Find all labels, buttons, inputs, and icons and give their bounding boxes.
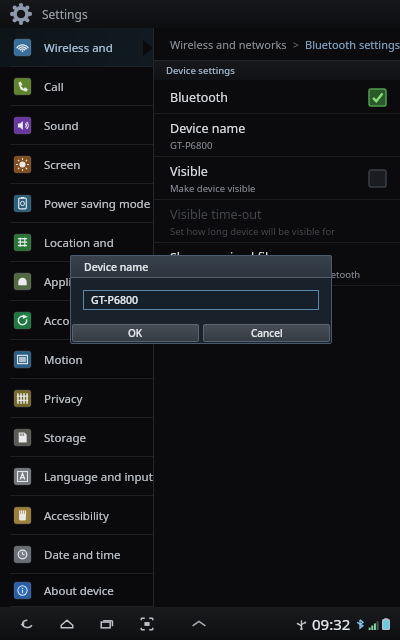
staticText: Sound bbox=[44, 118, 79, 134]
staticText: Device name bbox=[170, 120, 246, 137]
staticText: Screen bbox=[44, 157, 81, 173]
staticText: Motion bbox=[44, 352, 83, 368]
button[interactable]: Back bbox=[14, 611, 40, 637]
staticText: Make device visible bbox=[170, 182, 256, 195]
button[interactable]: Privacy bbox=[0, 379, 153, 418]
staticText: Applications bbox=[44, 274, 111, 290]
button[interactable]: Show received files bbox=[154, 243, 400, 286]
staticText: Visible time-out bbox=[170, 206, 262, 223]
button[interactable]: Location and security bbox=[0, 223, 153, 262]
staticText: Show received files bbox=[170, 249, 282, 266]
staticText: Show the list of files received via Blue… bbox=[170, 268, 361, 281]
button[interactable]: Sound bbox=[0, 106, 153, 145]
staticText: OK bbox=[128, 326, 143, 340]
staticText: Bluetooth bbox=[170, 89, 229, 106]
button[interactable]: Date and time bbox=[0, 535, 153, 574]
staticText: Date and time bbox=[44, 547, 121, 563]
staticText: Accounts and sync bbox=[44, 313, 144, 329]
button[interactable]: Wireless and networks bbox=[0, 28, 153, 67]
button[interactable]: Show notifications bbox=[186, 611, 212, 637]
button[interactable]: About device bbox=[0, 574, 153, 607]
staticText: Accessibility bbox=[44, 508, 109, 524]
button[interactable]: Cancel bbox=[203, 324, 330, 342]
staticText: Location and security bbox=[44, 235, 153, 251]
button[interactable]: OK bbox=[72, 324, 199, 342]
staticText: Set how long device will be visible for bbox=[170, 225, 336, 238]
button[interactable]: Status icons bbox=[296, 614, 392, 634]
button[interactable]: Motion bbox=[0, 340, 153, 379]
button[interactable]: Home bbox=[54, 611, 80, 637]
staticText: Wireless and networks bbox=[44, 40, 153, 56]
staticText: About device bbox=[44, 583, 114, 599]
button[interactable]: Screenshot bbox=[134, 611, 160, 637]
staticText: Cancel bbox=[251, 326, 283, 340]
staticText: Bluetooth settings bbox=[305, 37, 400, 52]
button[interactable]: Device name bbox=[154, 114, 400, 157]
staticText: Settings bbox=[42, 6, 88, 22]
button[interactable]: Power saving mode bbox=[0, 184, 153, 223]
staticText: Language and input bbox=[44, 469, 153, 485]
staticText: Privacy bbox=[44, 391, 83, 407]
button[interactable]: Applications bbox=[0, 262, 153, 301]
button[interactable]: Language and input bbox=[0, 457, 153, 496]
staticText: Wireless and networks bbox=[170, 37, 287, 52]
staticText: > bbox=[287, 37, 305, 52]
staticText: Call bbox=[44, 79, 64, 95]
button[interactable]: Screen bbox=[0, 145, 153, 184]
button[interactable]: Storage bbox=[0, 418, 153, 457]
button[interactable]: Visible time-out bbox=[154, 200, 400, 243]
staticText: Device settings bbox=[166, 64, 235, 77]
button[interactable]: Visible bbox=[154, 157, 400, 200]
staticText: GT-P6800 bbox=[170, 139, 213, 152]
button[interactable]: Accounts and sync bbox=[0, 301, 153, 340]
button[interactable]: Call bbox=[0, 67, 153, 106]
button[interactable]: Recent apps bbox=[94, 611, 120, 637]
button[interactable]: Bluetooth bbox=[154, 80, 400, 114]
staticText: Power saving mode bbox=[44, 196, 151, 212]
staticText: Visible bbox=[170, 163, 208, 180]
staticText: Storage bbox=[44, 430, 86, 446]
staticText: GT-P6800 bbox=[91, 293, 138, 307]
staticText: 09:32 bbox=[312, 614, 351, 634]
button[interactable]: Accessibility bbox=[0, 496, 153, 535]
staticText: Device name bbox=[84, 260, 149, 274]
